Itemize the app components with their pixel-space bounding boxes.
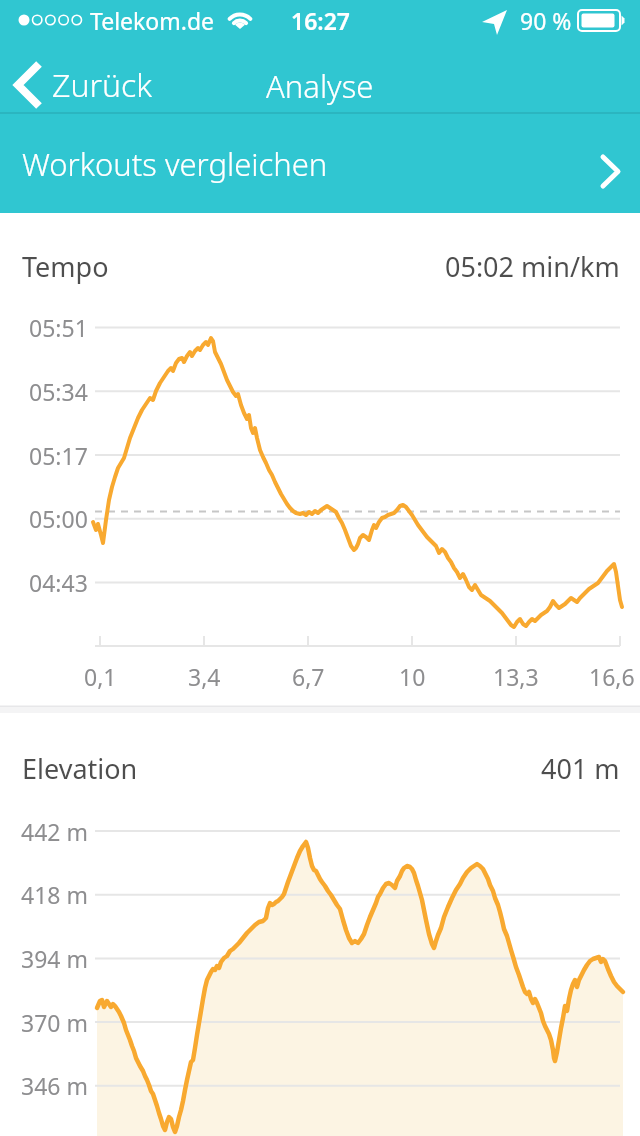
staticText: Analyse	[266, 65, 374, 107]
staticText: 418 m	[21, 879, 88, 910]
staticText: 05:17	[29, 440, 88, 471]
staticText: 10	[399, 661, 426, 692]
staticText: 05:51	[29, 312, 88, 343]
staticText: 0,1	[84, 661, 117, 692]
staticText: 05:02 min/km	[445, 248, 620, 285]
staticText: 401 m	[541, 750, 620, 787]
staticText: 16,6	[589, 661, 635, 692]
staticText: 6,7	[292, 661, 325, 692]
button[interactable]: Zurück	[10, 55, 170, 115]
staticText: Tempo	[22, 248, 109, 285]
staticText: 13,3	[493, 661, 539, 692]
staticText: Zurück	[52, 63, 153, 107]
staticText: 05:00	[29, 503, 88, 534]
staticText: 04:43	[29, 567, 88, 598]
staticText: 370 m	[21, 1007, 88, 1038]
button[interactable]: Workouts vergleichen	[0, 114, 640, 213]
staticText: 442 m	[21, 816, 88, 847]
staticText: 394 m	[21, 943, 88, 974]
staticText: Telekom.de	[90, 5, 215, 36]
staticText: 05:34	[29, 376, 88, 407]
staticText: Workouts vergleichen	[22, 143, 328, 185]
staticText: 3,4	[188, 661, 221, 692]
staticText: Elevation	[22, 750, 138, 787]
staticText: 16:27	[291, 5, 350, 36]
staticText: 90 %	[520, 5, 572, 36]
staticText: 346 m	[21, 1070, 88, 1101]
